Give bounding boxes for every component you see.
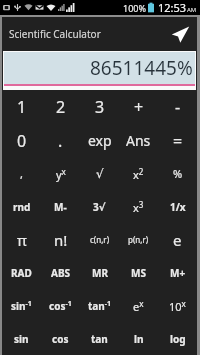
- button[interactable]: =: [158, 124, 197, 157]
- button[interactable]: 1: [2, 90, 41, 124]
- staticText: ABS: [51, 266, 71, 280]
- staticText: 0: [17, 130, 27, 152]
- button[interactable]: MS: [119, 256, 158, 289]
- button[interactable]: log: [158, 322, 197, 355]
- staticText: 3: [95, 96, 105, 118]
- staticText: 2: [56, 96, 66, 118]
- staticText: cos-1: [49, 299, 72, 313]
- staticText: √: [96, 167, 104, 181]
- button[interactable]: √: [80, 157, 119, 190]
- staticText: M-: [54, 200, 67, 214]
- staticText: 3√: [93, 200, 106, 214]
- button[interactable]: 10x: [158, 289, 197, 322]
- staticText: MR: [92, 266, 108, 280]
- staticText: ,: [20, 166, 23, 181]
- staticText: 100%: [123, 2, 146, 14]
- button[interactable]: c(n,r): [80, 223, 119, 256]
- staticText: 12:53: [158, 0, 187, 15]
- button[interactable]: Send: [163, 17, 197, 51]
- button[interactable]: 3√: [80, 190, 119, 223]
- button[interactable]: rnd: [2, 190, 41, 223]
- staticText: RAD: [11, 266, 32, 280]
- staticText: c(n,r): [90, 234, 110, 245]
- button[interactable]: MR: [80, 256, 119, 289]
- button[interactable]: Ans: [119, 124, 158, 157]
- button[interactable]: ABS: [41, 256, 80, 289]
- staticText: 1/x: [170, 200, 186, 214]
- staticText: n!: [54, 230, 68, 250]
- button[interactable]: 0: [2, 124, 41, 157]
- button[interactable]: cos-1: [41, 289, 80, 322]
- button[interactable]: tan: [80, 322, 119, 355]
- button[interactable]: 1/x: [158, 190, 197, 223]
- staticText: Ans: [126, 131, 151, 150]
- staticText: M+: [170, 266, 186, 280]
- staticText: cos: [52, 332, 69, 346]
- button[interactable]: exp: [80, 124, 119, 157]
- button[interactable]: x2: [119, 157, 158, 190]
- button[interactable]: sin-1: [2, 289, 41, 322]
- button[interactable]: .: [41, 124, 80, 157]
- button[interactable]: π: [2, 223, 41, 256]
- button[interactable]: M-: [41, 190, 80, 223]
- staticText: x3: [133, 199, 144, 215]
- button[interactable]: +: [119, 90, 158, 124]
- staticText: =: [173, 130, 183, 152]
- button[interactable]: -: [158, 90, 197, 124]
- staticText: sin-1: [11, 299, 32, 313]
- button[interactable]: M+: [158, 256, 197, 289]
- button[interactable]: RAD: [2, 256, 41, 289]
- staticText: exp: [88, 131, 112, 150]
- staticText: rnd: [13, 200, 31, 214]
- staticText: ln: [134, 332, 144, 346]
- button[interactable]: cos: [41, 322, 80, 355]
- button[interactable]: 2: [41, 90, 80, 124]
- button[interactable]: 3: [80, 90, 119, 124]
- staticText: 1: [17, 96, 27, 118]
- staticText: π: [17, 230, 27, 250]
- button[interactable]: ex: [119, 289, 158, 322]
- staticText: %: [173, 166, 183, 181]
- staticText: 86511445%: [90, 55, 193, 81]
- staticText: -: [175, 96, 181, 118]
- staticText: 10x: [169, 298, 186, 314]
- staticText: p(n,r): [128, 234, 149, 245]
- button[interactable]: sin: [2, 322, 41, 355]
- staticText: .: [58, 130, 63, 152]
- staticText: tan: [91, 332, 108, 346]
- staticText: tan-1: [88, 299, 112, 313]
- staticText: ex: [133, 298, 144, 314]
- button[interactable]: %: [158, 157, 197, 190]
- staticText: sin: [14, 332, 29, 346]
- staticText: e: [173, 230, 182, 250]
- staticText: x2: [133, 166, 144, 182]
- button[interactable]: x3: [119, 190, 158, 223]
- staticText: AM: [187, 6, 197, 14]
- button[interactable]: ln: [119, 322, 158, 355]
- button[interactable]: p(n,r): [119, 223, 158, 256]
- staticText: Scientific Calculator: [9, 27, 163, 41]
- staticText: yx: [56, 166, 66, 182]
- button[interactable]: ,: [2, 157, 41, 190]
- button[interactable]: tan-1: [80, 289, 119, 322]
- button[interactable]: e: [158, 223, 197, 256]
- button[interactable]: n!: [41, 223, 80, 256]
- staticText: MS: [131, 266, 146, 280]
- button[interactable]: yx: [41, 157, 80, 190]
- staticText: log: [170, 332, 186, 346]
- staticText: +: [134, 96, 144, 118]
